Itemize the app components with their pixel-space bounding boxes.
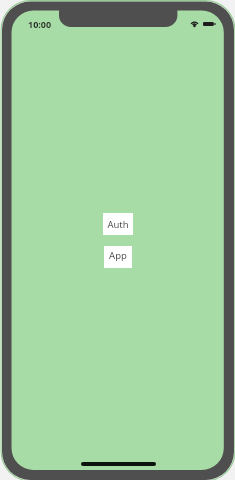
button[interactable]: Auth <box>103 213 133 235</box>
other: Wi-Fi signal <box>190 21 199 27</box>
staticText: App <box>109 249 127 262</box>
other: Battery full <box>203 22 215 26</box>
button[interactable]: App <box>104 246 132 268</box>
staticText: 10:00 <box>28 18 52 30</box>
staticText: Auth <box>107 218 129 231</box>
